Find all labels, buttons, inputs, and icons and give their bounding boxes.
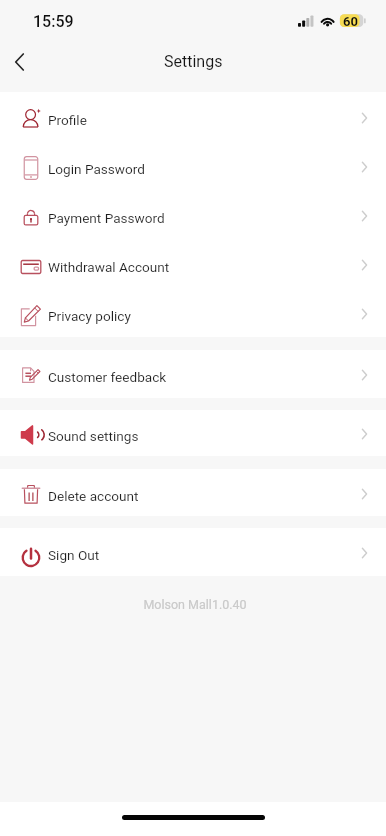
button[interactable]: Sound settings [0,410,386,456]
staticText: Customer feedback [48,369,167,385]
button[interactable]: Payment Password [0,190,386,239]
button[interactable]: Delete account [0,469,386,516]
button[interactable]: Privacy policy [0,288,386,337]
button[interactable]: Login Password [0,141,386,190]
staticText: Sound settings [48,428,139,444]
staticText: Privacy policy [48,308,131,324]
staticText: Payment Password [48,210,165,226]
staticText: 60 [343,14,358,29]
button[interactable]: Back [0,42,39,81]
staticText: Sign Out [48,547,100,563]
button[interactable]: Customer feedback [0,350,386,398]
staticText: Molson Mall1.0.40 [2,597,386,612]
button[interactable]: Withdrawal Account [0,239,386,288]
staticText: Login Password [48,161,145,177]
staticText: Withdrawal Account [48,259,170,275]
staticText: Settings [164,52,223,71]
staticText: Delete account [48,488,139,504]
button[interactable]: Sign Out [0,528,386,576]
button[interactable]: Profile [0,92,386,141]
staticText: 15:59 [33,12,74,31]
staticText: Profile [48,112,87,128]
